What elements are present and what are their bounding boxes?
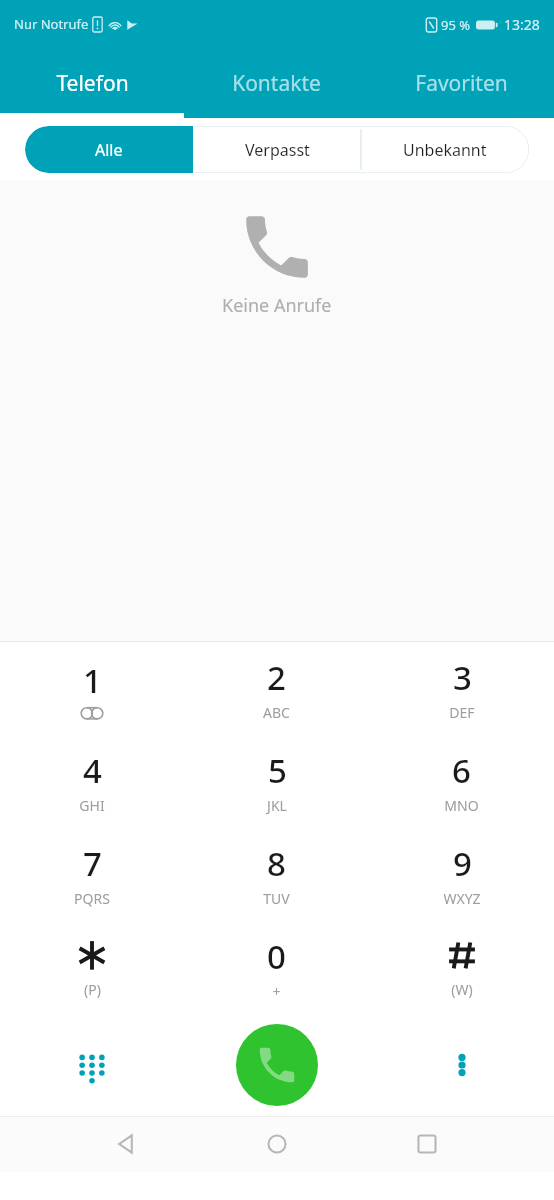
button[interactable]: (W) [369,921,554,1014]
button[interactable]: 5 [184,735,369,828]
staticText: Keine Anrufe [222,293,332,318]
button[interactable]: 3 [369,642,554,735]
staticText: 1 [83,658,102,703]
button[interactable]: Unbekannt [361,126,529,173]
button[interactable]: Favoriten [369,48,554,118]
button[interactable]: Recent apps [400,1117,454,1171]
button[interactable]: 9 [369,828,554,921]
staticText: Kontakte [232,69,321,98]
button[interactable]: Show dialpad [0,1014,184,1116]
staticText: 0 [267,934,286,979]
staticText: DEF [449,703,475,722]
button[interactable]: 7 [0,828,184,921]
staticText: Alle [95,139,123,161]
staticText: 7 [83,841,102,886]
staticText: Nur Notrufe [14,15,89,33]
staticText: (W) [451,980,473,999]
staticText: Telefon [56,69,129,98]
staticText: TUV [263,889,290,908]
button[interactable]: 2 [184,642,369,735]
button[interactable]: Call [236,1024,318,1106]
staticText: 8 [267,841,286,886]
staticText: 4 [83,748,102,793]
staticText: 95 % [441,16,471,34]
staticText: 13:28 [504,15,540,34]
button[interactable]: 6 [369,735,554,828]
staticText: PQRS [74,889,110,908]
staticText: 6 [452,748,471,793]
staticText: (P) [84,980,101,999]
button[interactable]: Verpasst [193,126,361,173]
staticText: + [272,982,281,1001]
button[interactable]: More options [369,1014,554,1116]
button[interactable]: Telefon [0,48,184,118]
staticText: 5 [268,748,287,793]
button[interactable]: 8 [184,828,369,921]
button[interactable]: 0 [184,921,369,1014]
staticText: ABC [263,703,290,722]
staticText: MNO [444,796,479,815]
staticText: Verpasst [245,139,310,161]
button[interactable]: (P) [0,921,184,1014]
staticText: Favoriten [415,69,508,98]
button[interactable]: 4 [0,735,184,828]
button[interactable]: Kontakte [184,48,369,118]
staticText: Unbekannt [403,139,487,161]
staticText: WXYZ [443,889,481,908]
button[interactable]: Back [100,1117,154,1171]
staticText: 3 [453,655,472,700]
button[interactable]: Home [250,1117,304,1171]
staticText: 9 [453,841,472,886]
staticText: GHI [79,796,105,815]
button[interactable]: Alle [25,126,193,173]
staticText: 2 [267,655,286,700]
button[interactable]: 1 [0,642,184,735]
staticText: JKL [267,796,287,815]
